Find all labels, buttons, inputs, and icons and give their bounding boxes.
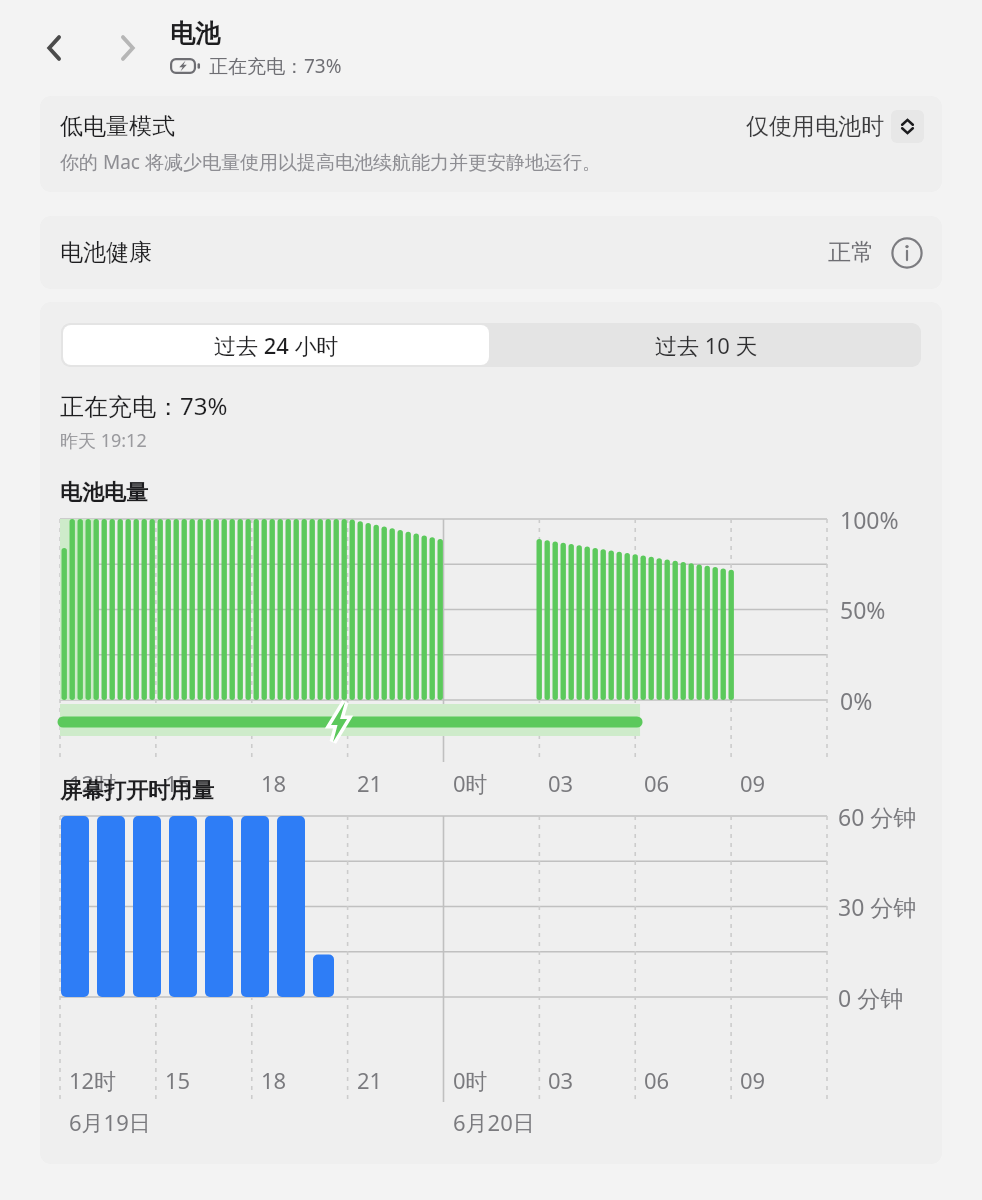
staticText: 06 — [644, 1065, 670, 1095]
button[interactable]: Back — [32, 25, 78, 71]
staticText: 低电量模式 — [60, 112, 175, 141]
button[interactable]: 过去 24 小时 — [63, 325, 489, 365]
button[interactable]: 电池健康 — [40, 216, 942, 289]
staticText: 电池健康 — [60, 238, 152, 267]
staticText: 18 — [261, 1065, 287, 1095]
staticText: 50% — [840, 594, 886, 625]
staticText: 21 — [357, 1065, 383, 1095]
staticText: 6月19日 — [69, 1107, 151, 1137]
staticText: 仅使用电池时 — [746, 112, 884, 141]
staticText: 03 — [548, 768, 574, 798]
staticText: 06 — [644, 768, 670, 798]
staticText: 60 分钟 — [838, 801, 917, 832]
staticText: 12时 — [69, 768, 117, 798]
staticText: 12时 — [69, 1065, 117, 1095]
button[interactable]: 过去 10 天 — [491, 323, 921, 367]
button[interactable]: Forward — [104, 25, 150, 71]
staticText: 昨天 19:12 — [60, 428, 147, 453]
staticText: 15 — [165, 1065, 191, 1095]
staticText: 过去 10 天 — [655, 330, 758, 360]
staticText: 100% — [840, 504, 899, 535]
staticText: 正常 — [828, 238, 874, 267]
staticText: 09 — [740, 1065, 766, 1095]
staticText: 屏幕打开时用量 — [60, 777, 214, 805]
staticText: 03 — [548, 1065, 574, 1095]
staticText: 30 分钟 — [838, 891, 917, 922]
staticText: 过去 24 小时 — [214, 330, 339, 360]
staticText: 18 — [261, 768, 287, 798]
other: Battery health info — [890, 236, 924, 270]
staticText: 0 分钟 — [838, 982, 904, 1013]
staticText: 09 — [740, 768, 766, 798]
staticText: 电池 — [170, 18, 220, 49]
staticText: 正在充电：73% — [60, 389, 228, 422]
staticText: 电池电量 — [60, 479, 148, 507]
staticText: 21 — [357, 768, 383, 798]
staticText: 6月20日 — [453, 1107, 535, 1137]
staticText: 你的 Mac 将减少电量使用以提高电池续航能力并更安静地运行。 — [60, 149, 601, 175]
staticText: 0时 — [453, 768, 488, 798]
button[interactable]: 仅使用电池时 — [742, 106, 928, 147]
staticText: 0% — [840, 685, 873, 716]
staticText: 0时 — [453, 1065, 488, 1095]
staticText: 15 — [165, 768, 191, 798]
staticText: 正在充电：73% — [209, 53, 342, 79]
other: Change low power mode setting — [891, 110, 924, 143]
